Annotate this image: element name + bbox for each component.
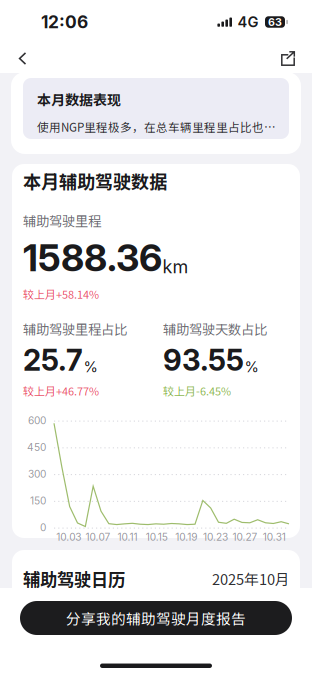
staticText: 10.19 (175, 531, 197, 543)
staticText: % (244, 358, 258, 376)
staticText: 600 (28, 414, 46, 427)
staticText: 辅助驾驶里程占比 (23, 319, 127, 338)
staticText: 分享我的辅助驾驶月度报告 (66, 607, 246, 629)
staticText: 450 (27, 441, 46, 453)
staticText: 使用NGP里程极多，在总车辆里程里占比也极高 (37, 118, 285, 135)
button[interactable]: 分享我的辅助驾驶月度报告 (20, 601, 292, 635)
staticText: % (83, 358, 97, 376)
staticText: 10.23 (203, 531, 228, 543)
staticText: 10.03 (56, 531, 81, 543)
staticText: 10.15 (146, 531, 168, 543)
staticText: 300 (28, 468, 46, 480)
staticText: 本月数据表现 (37, 89, 121, 109)
staticText: 较上月+46.77% (23, 383, 99, 399)
staticText: 63 (268, 15, 282, 28)
staticText: 4G (237, 13, 258, 31)
staticText: 辅助驾驶里程 (23, 211, 101, 230)
button[interactable]: Share (266, 44, 310, 73)
staticText: 较上月-6.45% (163, 383, 231, 399)
staticText: 0 (40, 521, 46, 534)
staticText: 10.27 (232, 531, 257, 543)
staticText: 12:06 (41, 11, 88, 32)
staticText: 辅助驾驶日历 (23, 566, 125, 591)
button[interactable]: Back (0, 44, 44, 73)
staticText: 25.7 (23, 342, 83, 378)
staticText: 1588.36 (23, 235, 162, 280)
staticText: 辅助驾驶天数占比 (163, 319, 267, 338)
staticText: 10.07 (86, 531, 111, 543)
staticText: 93.55 (163, 342, 244, 378)
staticText: 150 (30, 495, 46, 507)
staticText: 本月辅助驾驶数据 (23, 167, 167, 194)
staticText: 10.31 (263, 531, 286, 543)
staticText: km (162, 256, 188, 278)
staticText: 10.11 (117, 531, 137, 543)
staticText: 2025年10月 (212, 568, 290, 589)
staticText: 较上月+58.14% (23, 286, 99, 302)
